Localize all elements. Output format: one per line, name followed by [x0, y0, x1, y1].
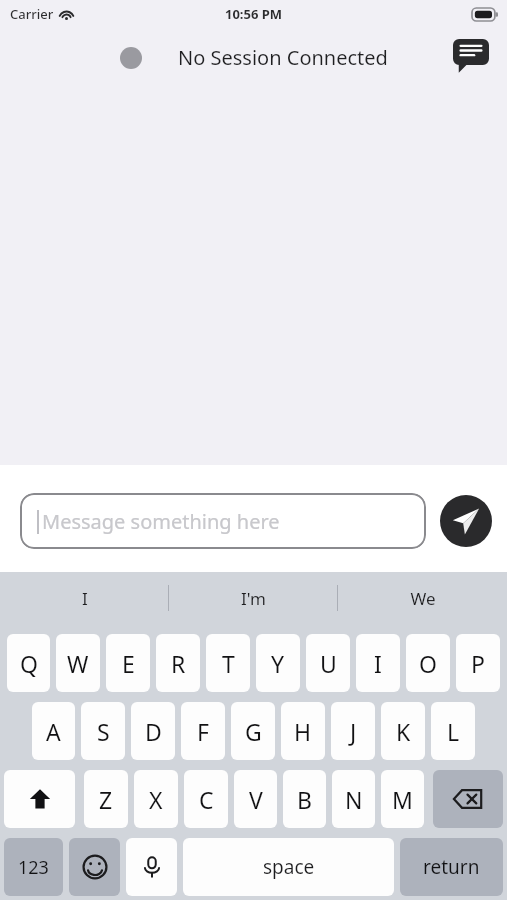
staticText: I'm: [241, 587, 266, 610]
staticText: Carrier: [10, 5, 54, 23]
button[interactable]: F: [181, 702, 225, 760]
staticText: A: [46, 716, 61, 747]
button[interactable]: Emoji: [69, 838, 120, 896]
button[interactable]: S: [81, 702, 125, 760]
staticText: 10:56 PM: [225, 5, 283, 23]
staticText: Z: [99, 784, 113, 815]
button[interactable]: P: [456, 634, 500, 692]
staticText: S: [97, 716, 110, 747]
staticText: K: [396, 716, 411, 747]
staticText: B: [297, 784, 312, 815]
button[interactable]: R: [156, 634, 200, 692]
staticText: We: [410, 587, 436, 610]
staticText: U: [320, 648, 337, 679]
button[interactable]: Shift: [4, 770, 75, 828]
button[interactable]: G: [231, 702, 275, 760]
staticText: N: [345, 784, 363, 815]
staticText: Q: [20, 648, 38, 679]
button[interactable]: U: [306, 634, 350, 692]
button[interactable]: Backspace: [433, 770, 503, 828]
button[interactable]: J: [331, 702, 375, 760]
staticText: E: [122, 648, 135, 679]
staticText: X: [149, 784, 163, 815]
staticText: space: [263, 854, 315, 880]
button[interactable]: H: [281, 702, 325, 760]
staticText: C: [199, 784, 214, 815]
button[interactable]: 123: [4, 838, 63, 896]
button[interactable]: Y: [256, 634, 300, 692]
staticText: Y: [271, 648, 285, 679]
staticText: O: [419, 648, 437, 679]
button[interactable]: A: [32, 702, 75, 760]
staticText: V: [249, 784, 263, 815]
staticText: I: [82, 587, 88, 610]
button[interactable]: O: [406, 634, 450, 692]
staticText: Message something here: [42, 508, 280, 535]
staticText: I: [374, 648, 382, 679]
button[interactable]: Send: [440, 495, 492, 547]
button[interactable]: W: [56, 634, 100, 692]
staticText: L: [447, 716, 460, 747]
button[interactable]: X: [134, 770, 178, 828]
button[interactable]: I: [356, 634, 400, 692]
button[interactable]: Q: [7, 634, 50, 692]
staticText: M: [392, 784, 413, 815]
button[interactable]: L: [431, 702, 475, 760]
button[interactable]: C: [184, 770, 228, 828]
button[interactable]: space: [183, 838, 394, 896]
staticText: P: [471, 648, 485, 679]
staticText: W: [67, 648, 89, 679]
staticText: G: [245, 716, 262, 747]
button[interactable]: D: [131, 702, 175, 760]
button[interactable]: V: [234, 770, 277, 828]
staticText: H: [294, 716, 312, 747]
button[interactable]: Z: [84, 770, 128, 828]
button[interactable]: K: [381, 702, 425, 760]
button[interactable]: T: [206, 634, 250, 692]
button[interactable]: N: [332, 770, 375, 828]
button[interactable]: I'm: [169, 572, 338, 624]
staticText: No Session Connected: [178, 44, 388, 71]
staticText: F: [197, 716, 209, 747]
staticText: R: [171, 648, 186, 679]
button[interactable]: Voice input: [126, 838, 177, 896]
button[interactable]: I: [0, 572, 169, 624]
staticText: 123: [18, 855, 49, 880]
button[interactable]: M: [381, 770, 424, 828]
staticText: T: [222, 648, 235, 679]
button[interactable]: B: [283, 770, 326, 828]
button[interactable]: Message something here: [20, 493, 426, 549]
staticText: J: [350, 716, 357, 747]
button[interactable]: E: [106, 634, 150, 692]
staticText: D: [145, 716, 162, 747]
staticText: return: [423, 854, 480, 880]
button[interactable]: return: [400, 838, 503, 896]
button[interactable]: We: [338, 572, 507, 624]
button[interactable]: Messages: [451, 37, 491, 77]
